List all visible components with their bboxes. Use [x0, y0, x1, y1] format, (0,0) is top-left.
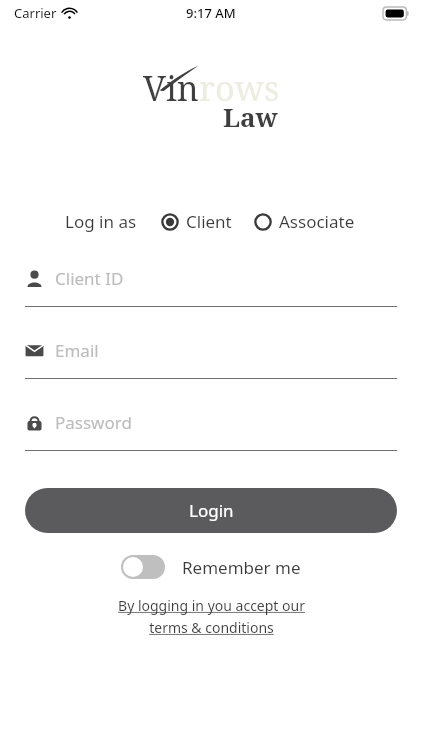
button[interactable]: Email — [25, 339, 397, 379]
staticText: Law — [223, 99, 278, 134]
staticText: Login — [189, 499, 234, 522]
staticText: rows — [199, 65, 280, 111]
staticText: Email — [55, 339, 99, 362]
staticText: Associate — [279, 210, 355, 233]
staticText: Log in as — [65, 210, 137, 233]
button[interactable]: Client — [159, 206, 234, 237]
staticText: terms & conditions — [149, 618, 274, 637]
staticText: Client ID — [55, 267, 124, 290]
button[interactable]: By logging in you accept our — [60, 596, 362, 637]
staticText: Client — [186, 210, 232, 233]
staticText: Carrier — [14, 4, 57, 22]
button[interactable]: Login — [25, 488, 397, 533]
button[interactable]: Client ID — [25, 267, 397, 307]
staticText: Vin — [143, 65, 199, 111]
staticText: Remember me — [182, 556, 301, 579]
button[interactable]: Associate — [252, 206, 357, 237]
staticText: 9:17 AM — [186, 4, 236, 22]
staticText: By logging in you accept our — [118, 596, 305, 615]
button[interactable]: Password — [25, 411, 397, 451]
staticText: Password — [55, 411, 132, 434]
button[interactable]: Remember me toggle — [121, 555, 165, 579]
